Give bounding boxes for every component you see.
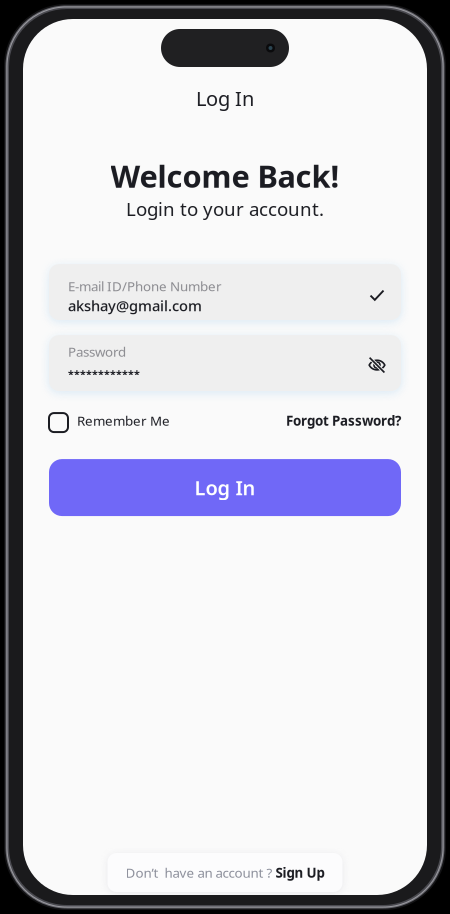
button[interactable]: Log In [49,459,401,516]
button[interactable]: Password [49,335,401,391]
button[interactable]: Remember Me [49,411,170,430]
staticText: Log In [194,474,255,501]
staticText: Remember Me [77,412,170,429]
staticText: Welcome Back! [110,156,339,196]
button[interactable]: E-mail ID/Phone Number [49,264,401,320]
staticText: Forgot Password? [286,412,401,429]
staticText: Don’t have an account ? [125,864,275,881]
staticText: E-mail ID/Phone Number [68,277,222,295]
button[interactable]: Don’t have an account ? [107,853,342,892]
staticText: Password [68,343,126,360]
staticText: Login to your account. [126,196,324,221]
staticText: Log In [196,85,254,112]
staticText: akshay@gmail.com [68,296,202,315]
button[interactable]: Forgot Password? [286,412,401,429]
staticText: Sign Up [275,864,324,881]
staticText: ************ [68,367,140,381]
